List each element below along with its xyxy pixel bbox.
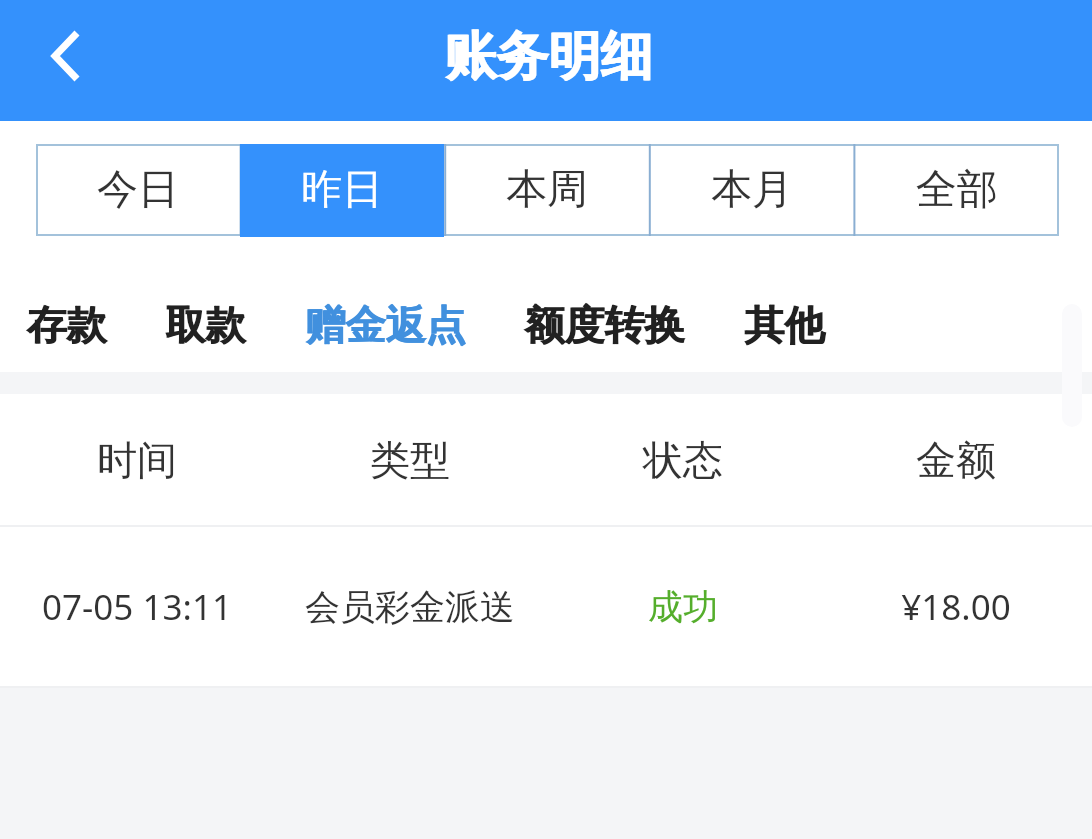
button[interactable]: 额度转换 — [504, 289, 704, 361]
staticText: 类型 — [370, 435, 450, 485]
button[interactable]: 其他 — [726, 289, 842, 361]
staticText: 赠金返点 — [305, 300, 465, 350]
button[interactable]: 本月 — [649, 144, 854, 237]
button[interactable]: 07-05 13:11 — [0, 527, 1092, 686]
staticText: 取款 — [166, 300, 246, 350]
staticText: 状态 — [643, 435, 723, 485]
staticText: 其他 — [744, 300, 824, 350]
button[interactable]: 今日 — [36, 144, 240, 237]
staticText: 存款 — [27, 300, 107, 350]
staticText: 昨日 — [301, 164, 383, 216]
staticText: 今日 — [97, 164, 179, 216]
button[interactable]: 取款 — [147, 289, 263, 361]
staticText: 时间 — [97, 435, 177, 485]
staticText: 金额 — [916, 435, 996, 485]
staticText: 存款 — [26, 300, 106, 350]
staticText: 成功 — [648, 585, 718, 629]
staticText: 本周 — [506, 164, 588, 216]
staticText: 账务明细 — [444, 24, 652, 90]
staticText: 取款 — [165, 300, 245, 350]
staticText: 其他 — [745, 300, 825, 350]
staticText: 本月 — [711, 164, 793, 216]
staticText: 额度转换 — [525, 300, 685, 350]
staticText: 账务明细 — [445, 24, 653, 90]
button[interactable]: 全部 — [854, 144, 1059, 237]
button[interactable]: 昨日 — [240, 144, 444, 237]
button[interactable]: Back — [18, 8, 112, 112]
staticText: ¥18.00 — [901, 583, 1011, 631]
button[interactable]: 赠金返点 — [285, 289, 485, 361]
staticText: 额度转换 — [524, 300, 684, 350]
staticText: 会员彩金派送 — [305, 585, 515, 629]
button[interactable]: 存款 — [8, 289, 124, 361]
staticText: 07-05 13:11 — [42, 583, 232, 631]
button[interactable]: 本周 — [444, 144, 649, 237]
staticText: 全部 — [916, 164, 998, 216]
staticText: 赠金返点 — [306, 300, 466, 350]
